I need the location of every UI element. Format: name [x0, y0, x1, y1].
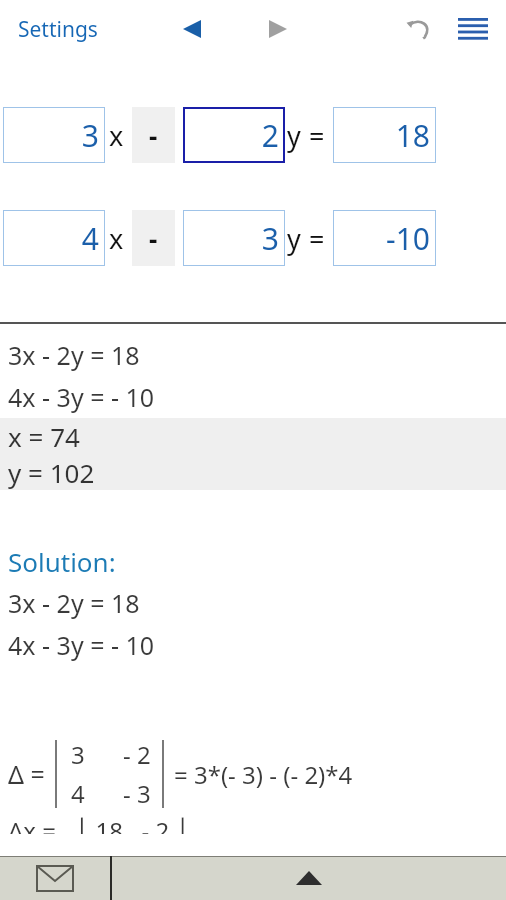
staticText: x: [109, 117, 124, 154]
staticText: -10: [386, 218, 430, 259]
staticText: 3x - 2y = 18: [8, 586, 140, 620]
staticText: y: [287, 117, 301, 154]
staticText: 4x - 3y = - 10: [8, 628, 155, 662]
staticText: 3: [81, 115, 99, 156]
staticText: Settings: [18, 15, 98, 44]
staticText: Δ =: [8, 757, 45, 791]
button[interactable]: Next: [256, 7, 300, 51]
staticText: 4: [71, 777, 85, 810]
staticText: 3x - 2y = 18: [8, 338, 140, 372]
staticText: = 3*(- 3) - (- 2)*4: [174, 758, 353, 791]
staticText: x: [109, 220, 124, 257]
staticText: 4x - 3y = - 10: [8, 380, 155, 414]
button[interactable]: Expand: [112, 856, 506, 900]
staticText: =: [309, 117, 325, 154]
staticText: y: [287, 220, 301, 257]
staticText: Solution:: [8, 544, 116, 579]
staticText: -: [149, 118, 158, 153]
staticText: y = 102: [8, 455, 95, 490]
button[interactable]: Settings: [14, 11, 102, 48]
button[interactable]: -10: [333, 210, 436, 266]
button[interactable]: -: [132, 210, 175, 266]
staticText: 3: [261, 218, 279, 259]
staticText: x = 74: [8, 419, 80, 454]
staticText: 2: [261, 115, 279, 156]
button[interactable]: Menu: [450, 6, 496, 52]
staticText: - 2: [123, 738, 151, 771]
staticText: 4: [81, 218, 99, 259]
staticText: 3: [71, 738, 85, 771]
button[interactable]: 3: [183, 210, 285, 266]
button[interactable]: Previous: [170, 7, 214, 51]
button[interactable]: Mail: [0, 856, 110, 900]
staticText: 18: [395, 115, 430, 156]
button[interactable]: 4: [3, 210, 105, 266]
staticText: =: [309, 220, 325, 257]
button[interactable]: 18: [333, 107, 436, 163]
staticText: - 3: [123, 777, 151, 810]
staticText: Δx = │ 18 - 2 │: [8, 814, 190, 834]
button[interactable]: Undo: [396, 6, 442, 52]
button[interactable]: -: [132, 107, 175, 163]
button[interactable]: 2: [183, 107, 285, 163]
staticText: -: [149, 221, 158, 256]
button[interactable]: 3: [3, 107, 105, 163]
